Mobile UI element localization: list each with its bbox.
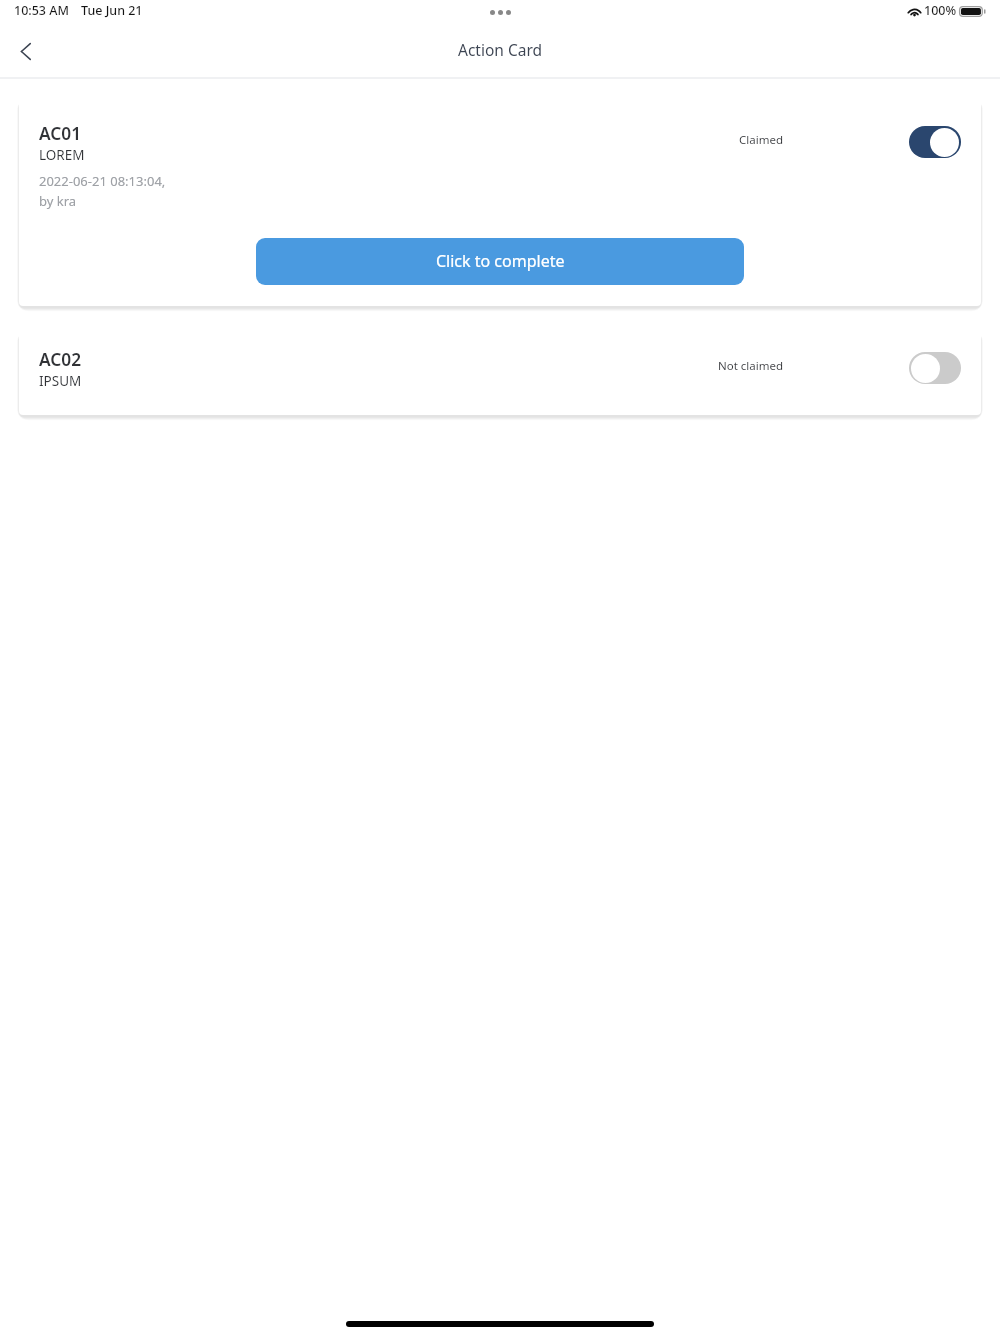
staticText: AC01 [39, 122, 82, 146]
button[interactable]: Click to complete [256, 238, 744, 285]
staticText: IPSUM [39, 372, 82, 390]
staticText: Click to complete [436, 250, 565, 272]
staticText: AC02 [39, 348, 82, 372]
staticText: LOREM [39, 146, 85, 164]
button[interactable]: Claimed toggle [909, 126, 961, 158]
button[interactable]: Back [3, 29, 47, 73]
staticText: Action Card [458, 39, 543, 60]
button[interactable]: Not claimed toggle [909, 352, 961, 384]
staticText: Not claimed [718, 358, 784, 374]
staticText: Tue Jun 21 [81, 2, 143, 19]
staticText: 2022-06-21 08:13:04, [39, 172, 166, 190]
staticText: Claimed [739, 132, 783, 148]
button[interactable]: AC02 action card [19, 331, 981, 415]
staticText: by kra [39, 192, 77, 210]
staticText: 100% [924, 2, 957, 19]
staticText: 10:53 AM [14, 2, 69, 19]
button[interactable]: AC01 action card [19, 99, 981, 306]
